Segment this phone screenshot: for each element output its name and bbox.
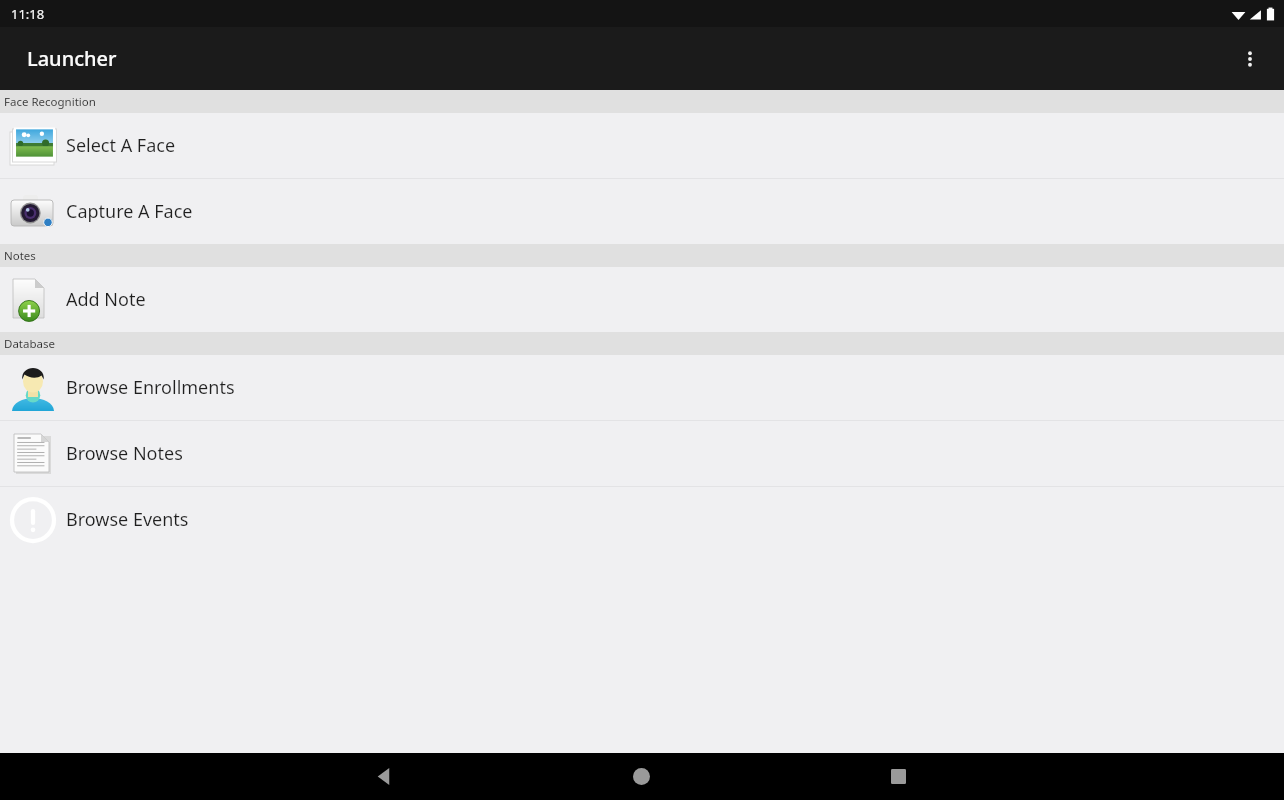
button[interactable]: Capture A Face xyxy=(0,179,1284,244)
button[interactable]: Browse Events xyxy=(0,487,1284,552)
button[interactable]: Select A Face xyxy=(0,113,1284,178)
button[interactable]: More options xyxy=(1226,35,1274,83)
staticText: Browse Enrollments xyxy=(66,375,235,400)
button[interactable]: Add Note xyxy=(0,267,1284,332)
staticText: Launcher xyxy=(27,45,117,72)
staticText: Select A Face xyxy=(66,133,176,158)
staticText: Browse Notes xyxy=(66,441,183,466)
staticText: Face Recognition xyxy=(4,94,96,110)
staticText: Browse Events xyxy=(66,507,189,532)
staticText: Notes xyxy=(4,248,36,264)
button[interactable]: Browse Enrollments xyxy=(0,355,1284,420)
staticText: 11:18 xyxy=(11,5,45,23)
staticText: Capture A Face xyxy=(66,199,193,224)
staticText: Database xyxy=(4,336,55,352)
staticText: Add Note xyxy=(66,287,146,312)
button[interactable]: Home xyxy=(513,753,770,800)
button[interactable]: Browse Notes xyxy=(0,421,1284,486)
button[interactable]: Back xyxy=(256,753,513,800)
button[interactable]: Recent apps xyxy=(770,753,1027,800)
